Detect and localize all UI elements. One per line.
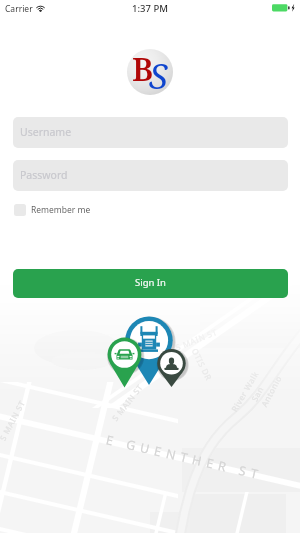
- staticText: Password: [20, 168, 68, 182]
- staticText: Sign In: [135, 276, 166, 289]
- button[interactable]: Sign In: [13, 269, 288, 298]
- staticText: Username: [20, 125, 72, 139]
- staticText: Carrier: [5, 3, 33, 15]
- staticText: S: [149, 53, 168, 99]
- staticText: Remember me: [31, 204, 91, 216]
- other: Wi-Fi: [36, 4, 45, 12]
- button[interactable]: Remember me: [14, 202, 86, 218]
- button[interactable]: Password: [13, 160, 288, 191]
- staticText: 1:37 PM: [0, 2, 300, 15]
- staticText: B: [132, 47, 154, 91]
- button[interactable]: Username: [13, 117, 288, 148]
- other: Vehicle map: [100, 310, 196, 394]
